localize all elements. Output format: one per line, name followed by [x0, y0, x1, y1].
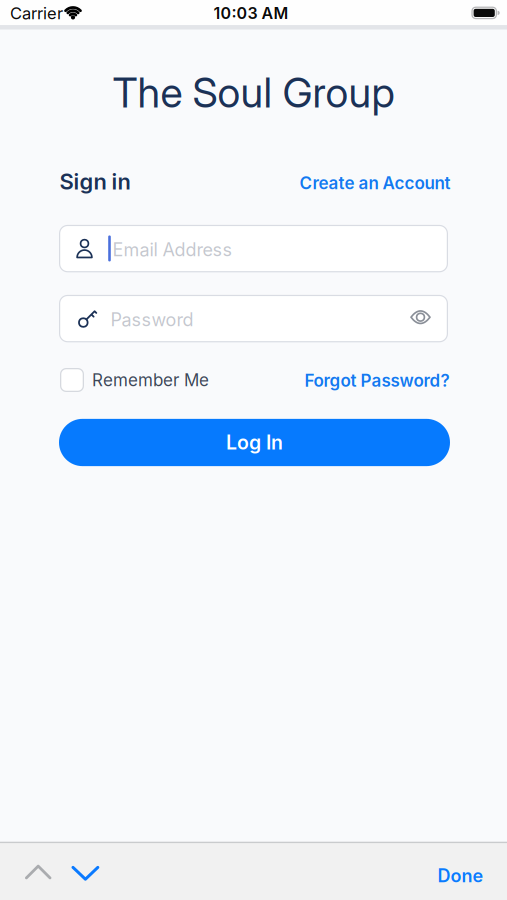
staticText: Done: [437, 865, 483, 887]
staticText: Carrier: [10, 3, 63, 23]
button[interactable]: Previous field: [20, 855, 56, 889]
staticText: Email Address: [112, 239, 232, 261]
staticText: Create an Account: [299, 173, 450, 193]
button[interactable]: Done: [437, 865, 483, 887]
staticText: The Soul Group: [112, 68, 394, 117]
button[interactable]: Show Password: [403, 300, 437, 334]
button[interactable]: Create an Account: [299, 173, 450, 193]
button[interactable]: Password: [59, 295, 448, 342]
staticText: Remember Me: [92, 370, 209, 390]
button[interactable]: Next field: [67, 856, 103, 890]
staticText: Password: [110, 309, 193, 331]
button[interactable]: Log In: [59, 419, 450, 466]
staticText: Forgot Password?: [304, 370, 449, 391]
button[interactable]: Email Address: [59, 225, 448, 272]
staticText: 10:03 AM: [213, 3, 288, 23]
staticText: Sign in: [59, 168, 130, 195]
button[interactable]: Forgot Password?: [304, 370, 449, 391]
staticText: Log In: [226, 431, 283, 454]
button[interactable]: Remember Me: [60, 368, 232, 392]
